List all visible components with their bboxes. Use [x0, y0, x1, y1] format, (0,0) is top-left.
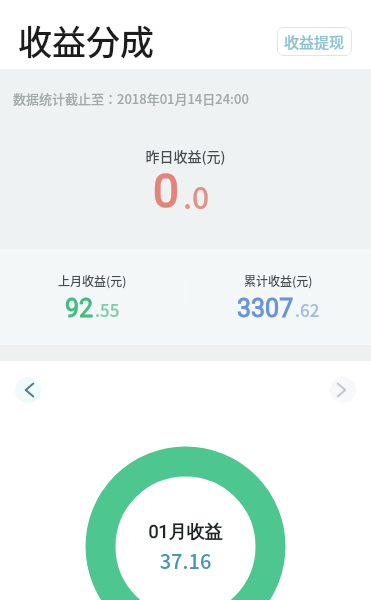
staticText: 累计收益(元)	[244, 272, 313, 289]
button[interactable]: 收益提现	[277, 27, 352, 56]
staticText: 37.16	[0, 546, 371, 575]
staticText: 01月收益	[0, 521, 371, 544]
staticText: 数据统计截止至：2018年01月14日24:00	[13, 89, 249, 108]
button[interactable]: Next month	[330, 377, 356, 403]
staticText: .55	[95, 297, 120, 322]
staticText: 92	[65, 294, 94, 323]
staticText: 收益分成	[18, 16, 154, 65]
staticText: 0	[153, 164, 179, 218]
staticText: 3307	[237, 294, 294, 323]
staticText: 收益提现	[284, 31, 345, 53]
staticText: 昨日收益(元)	[0, 146, 371, 166]
staticText: .62	[295, 297, 320, 322]
staticText: 上月收益(元)	[58, 272, 127, 289]
button[interactable]: Previous month	[15, 377, 41, 403]
staticText: .0	[183, 174, 210, 217]
